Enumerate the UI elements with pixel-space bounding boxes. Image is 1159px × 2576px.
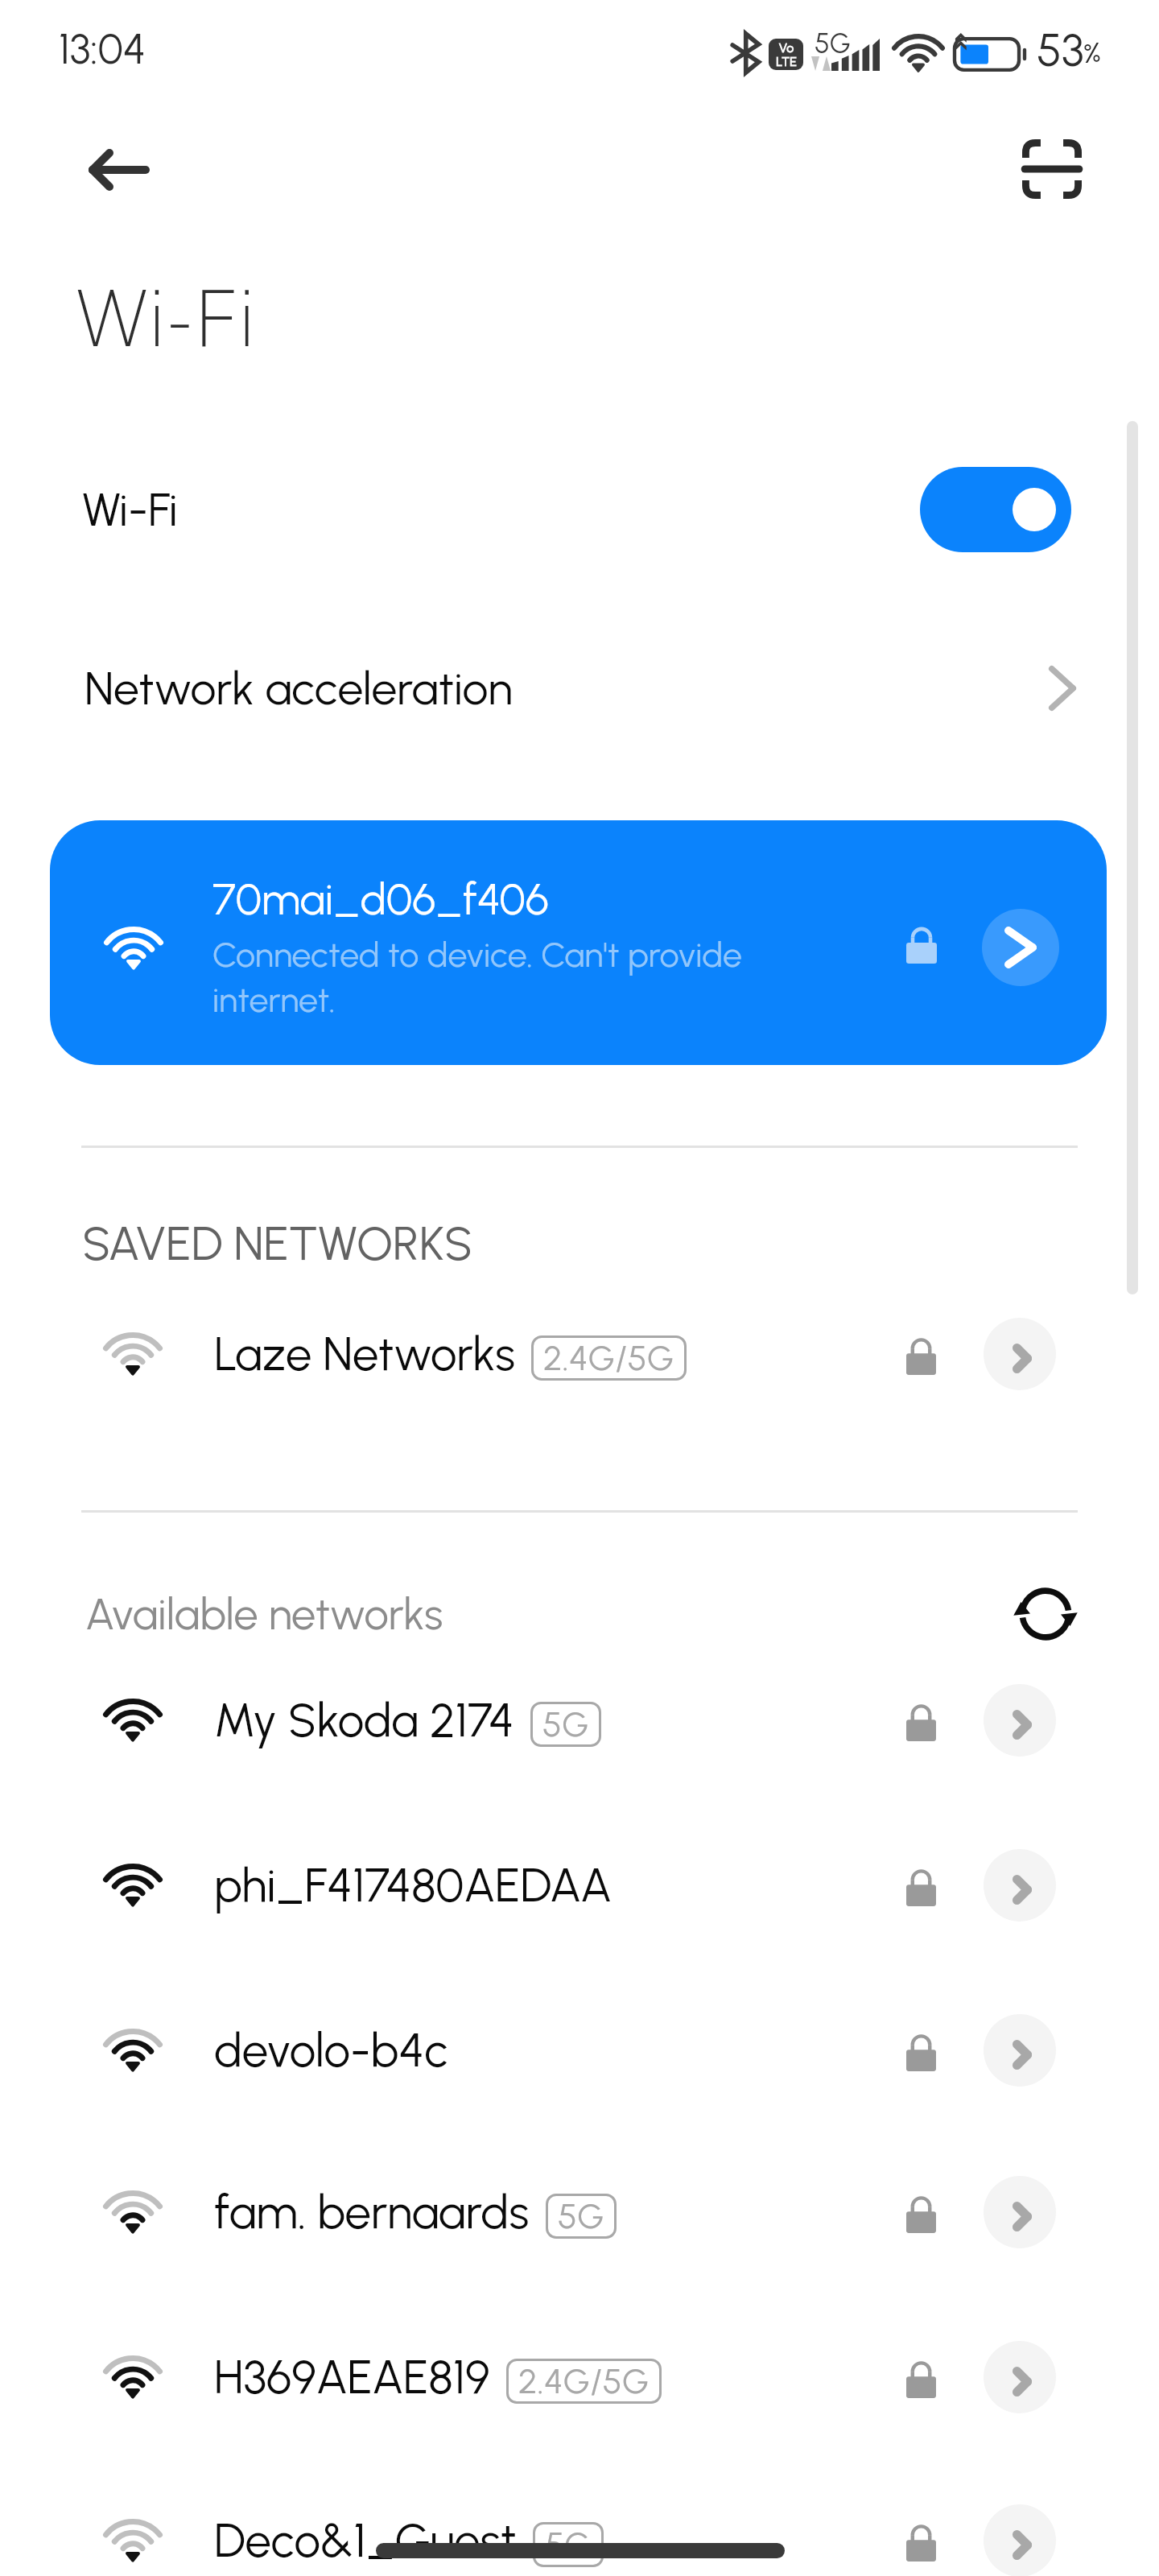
button[interactable]: Wi-Fi: [0, 452, 1159, 567]
button[interactable]: My Skoda 2174: [0, 1656, 1159, 1785]
staticText: 2.4G/5G: [543, 1337, 674, 1379]
staticText: 5G: [558, 2195, 604, 2237]
button[interactable]: Refresh: [1001, 1570, 1090, 1658]
staticText: 2.4G/5G: [518, 2360, 650, 2402]
button[interactable]: Network acceleration: [0, 636, 1159, 741]
staticText: Vo LTE: [776, 40, 797, 69]
staticText: %: [1083, 37, 1101, 70]
button[interactable]: fam. bernaards: [0, 2148, 1159, 2277]
staticText: SAVED NETWORKS: [82, 1216, 473, 1272]
staticText: Deco&1_Guest: [214, 2512, 517, 2569]
staticText: 5G: [542, 1703, 589, 1745]
staticText: phi_F417480AEDAA: [214, 1857, 612, 1913]
staticText: 70mai_d06_f406: [212, 873, 549, 926]
button[interactable]: Deco&1_Guest: [0, 2476, 1159, 2576]
button[interactable]: H369AEAE819: [0, 2313, 1159, 2442]
button[interactable]: 70mai_d06_f406: [50, 820, 1107, 1065]
button[interactable]: phi_F417480AEDAA: [0, 1821, 1159, 1950]
staticText: Network acceleration: [85, 661, 513, 716]
staticText: Wi-Fi: [82, 482, 178, 537]
button[interactable]: devolo-b4c: [0, 1986, 1159, 2115]
button[interactable]: Laze Networks: [0, 1290, 1159, 1418]
button[interactable]: Scan QR code: [996, 113, 1108, 225]
staticText: devolo-b4c: [214, 2022, 448, 2079]
staticText: H369AEAE819: [214, 2349, 490, 2405]
staticText: Wi-Fi: [76, 273, 256, 364]
staticText: 5G: [815, 27, 851, 60]
staticText: Laze Networks: [214, 1326, 515, 1382]
staticText: fam. bernaards: [214, 2184, 530, 2240]
staticText: Connected to device. Can't provide inter…: [212, 934, 742, 1021]
staticText: Available networks: [85, 1588, 443, 1641]
staticText: 5G: [545, 2524, 592, 2566]
staticText: 13:04: [59, 24, 146, 74]
staticText: My Skoda 2174: [214, 1692, 514, 1748]
staticText: 53: [1037, 23, 1084, 77]
button[interactable]: Back: [63, 114, 175, 226]
